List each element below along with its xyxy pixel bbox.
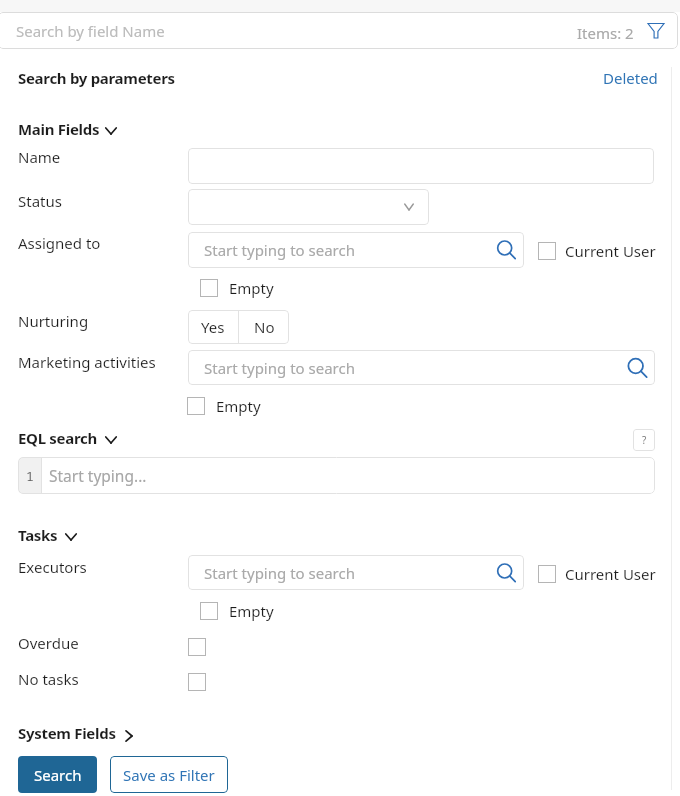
button[interactable]: Empty bbox=[187, 396, 261, 416]
button[interactable]: No tasks bbox=[188, 673, 206, 691]
button[interactable]: Empty bbox=[200, 601, 274, 621]
button[interactable]: Yes bbox=[188, 310, 238, 344]
button[interactable]: Search by field Name bbox=[0, 12, 678, 49]
staticText: Main Fields bbox=[18, 119, 100, 139]
button[interactable]: Search bbox=[18, 756, 97, 793]
staticText: Current User bbox=[565, 564, 656, 584]
staticText: Start typing... bbox=[49, 465, 147, 486]
button[interactable]: Start typing to search bbox=[188, 232, 524, 268]
button[interactable]: System Fields bbox=[18, 723, 116, 743]
button[interactable] bbox=[188, 189, 429, 225]
button[interactable]: Deleted bbox=[603, 68, 658, 88]
button[interactable]: Current User bbox=[538, 241, 656, 261]
staticText: 1 bbox=[26, 467, 34, 485]
staticText: Nurturing bbox=[18, 311, 89, 331]
button[interactable]: Empty bbox=[200, 278, 274, 298]
staticText: Marketing activities bbox=[18, 352, 156, 372]
staticText: Search by parameters bbox=[18, 68, 175, 88]
staticText: Yes bbox=[201, 317, 225, 337]
staticText: ? bbox=[642, 433, 647, 447]
button[interactable]: No bbox=[239, 310, 289, 344]
staticText: Executors bbox=[18, 557, 87, 577]
button[interactable]: Overdue bbox=[188, 638, 206, 656]
staticText: Start typing to search bbox=[204, 358, 355, 378]
staticText: Start typing to search bbox=[204, 240, 355, 260]
staticText: No bbox=[254, 317, 275, 337]
staticText: Name bbox=[18, 147, 61, 167]
staticText: Assigned to bbox=[18, 233, 101, 253]
staticText: EQL search bbox=[18, 428, 97, 448]
staticText: Items: 2 bbox=[577, 23, 634, 43]
staticText: Empty bbox=[229, 601, 274, 621]
button[interactable]: Start typing to search bbox=[188, 350, 655, 385]
staticText: Start typing to search bbox=[204, 563, 355, 583]
button[interactable]: Tasks bbox=[18, 525, 58, 545]
staticText: Overdue bbox=[18, 633, 79, 653]
button[interactable]: Current User bbox=[538, 564, 656, 584]
staticText: Tasks bbox=[18, 525, 58, 545]
button[interactable]: 1 bbox=[18, 457, 655, 494]
button[interactable] bbox=[188, 148, 654, 184]
staticText: Search bbox=[34, 765, 82, 785]
button[interactable]: Start typing to search bbox=[188, 555, 524, 590]
button[interactable]: Save as Filter bbox=[110, 756, 228, 793]
staticText: Search by field Name bbox=[16, 21, 165, 41]
staticText: Deleted bbox=[603, 68, 658, 88]
staticText: Empty bbox=[229, 278, 274, 298]
button[interactable]: EQL search bbox=[18, 428, 97, 448]
button[interactable]: Main Fields bbox=[18, 119, 100, 139]
button[interactable]: Search by parameters bbox=[18, 68, 175, 88]
button[interactable]: Filter bbox=[644, 19, 668, 43]
staticText: Status bbox=[18, 191, 62, 211]
staticText: Empty bbox=[216, 396, 261, 416]
staticText: System Fields bbox=[18, 723, 116, 743]
staticText: Current User bbox=[565, 241, 656, 261]
staticText: Save as Filter bbox=[123, 765, 215, 785]
staticText: No tasks bbox=[18, 669, 79, 689]
button[interactable]: Help bbox=[633, 429, 655, 451]
